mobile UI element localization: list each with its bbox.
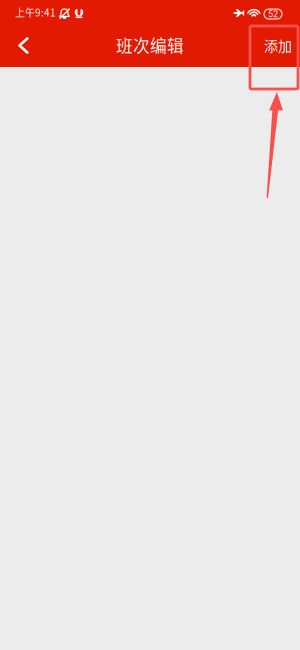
staticText: 班次编辑	[116, 33, 184, 57]
staticText: 添加	[264, 35, 292, 55]
staticText: 52	[268, 9, 278, 19]
button[interactable]: Back	[0, 27, 46, 67]
staticText: 上午9:41	[15, 5, 56, 19]
button[interactable]: 添加	[252, 27, 300, 67]
